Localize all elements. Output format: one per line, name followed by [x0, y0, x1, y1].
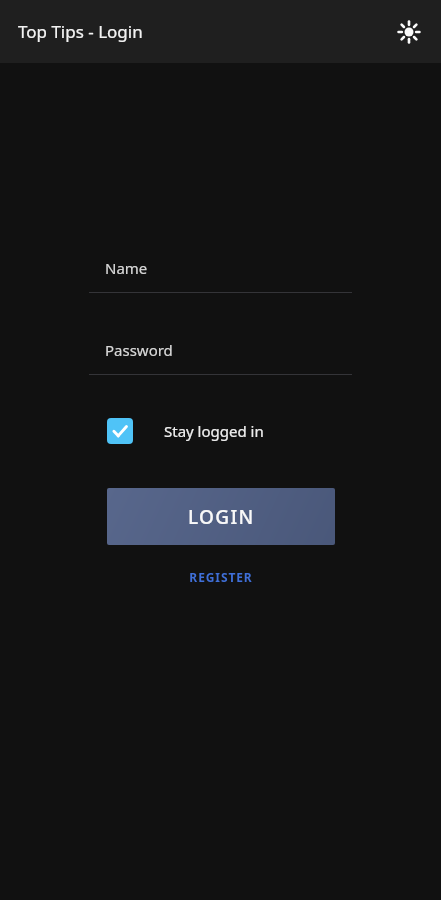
button[interactable]: Toggle brightness	[388, 11, 430, 53]
button[interactable]: REGISTER	[150, 561, 292, 592]
staticText: REGISTER	[189, 569, 253, 585]
staticText: Password	[105, 340, 173, 360]
staticText: Stay logged in	[164, 421, 264, 441]
staticText: LOGIN	[188, 504, 255, 530]
staticText: Top Tips - Login	[18, 20, 143, 43]
button[interactable]: Stay logged in	[100, 413, 264, 449]
staticText: Name	[105, 258, 148, 278]
button[interactable]: LOGIN	[107, 488, 335, 545]
